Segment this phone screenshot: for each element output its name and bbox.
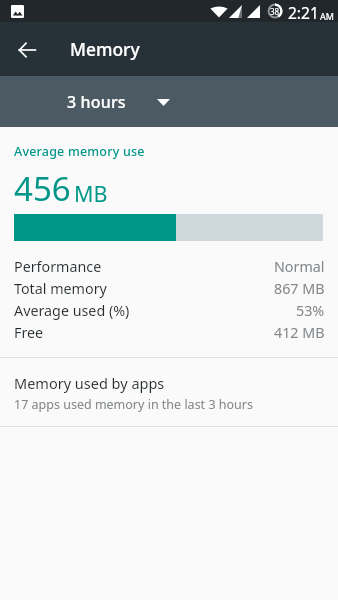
staticText: Average used (%): [14, 301, 130, 320]
staticText: MB: [74, 179, 108, 208]
staticText: Total memory: [14, 279, 107, 298]
staticText: Normal: [274, 257, 325, 276]
staticText: 17 apps used memory in the last 3 hours: [14, 396, 253, 413]
staticText: 2:21: [288, 2, 319, 23]
button[interactable]: Memory used by apps: [0, 358, 338, 426]
staticText: Memory: [70, 37, 140, 61]
staticText: 412 MB: [274, 323, 325, 342]
staticText: 867 MB: [274, 279, 325, 298]
staticText: 38: [270, 6, 280, 17]
staticText: 3 hours: [67, 91, 126, 113]
button[interactable]: Free: [0, 321, 338, 343]
button[interactable]: Total memory: [0, 277, 338, 299]
staticText: 53%: [296, 301, 325, 320]
staticText: AM: [320, 10, 334, 22]
staticText: 456: [14, 166, 71, 211]
staticText: Memory used by apps: [14, 373, 165, 393]
button[interactable]: Average used (%): [0, 299, 338, 321]
button[interactable]: 3 hours: [52, 83, 185, 121]
staticText: Average memory use: [14, 143, 145, 160]
staticText: Free: [14, 323, 44, 342]
staticText: Performance: [14, 257, 102, 276]
button[interactable]: Performance: [0, 255, 338, 277]
button[interactable]: Navigate up: [0, 22, 54, 76]
